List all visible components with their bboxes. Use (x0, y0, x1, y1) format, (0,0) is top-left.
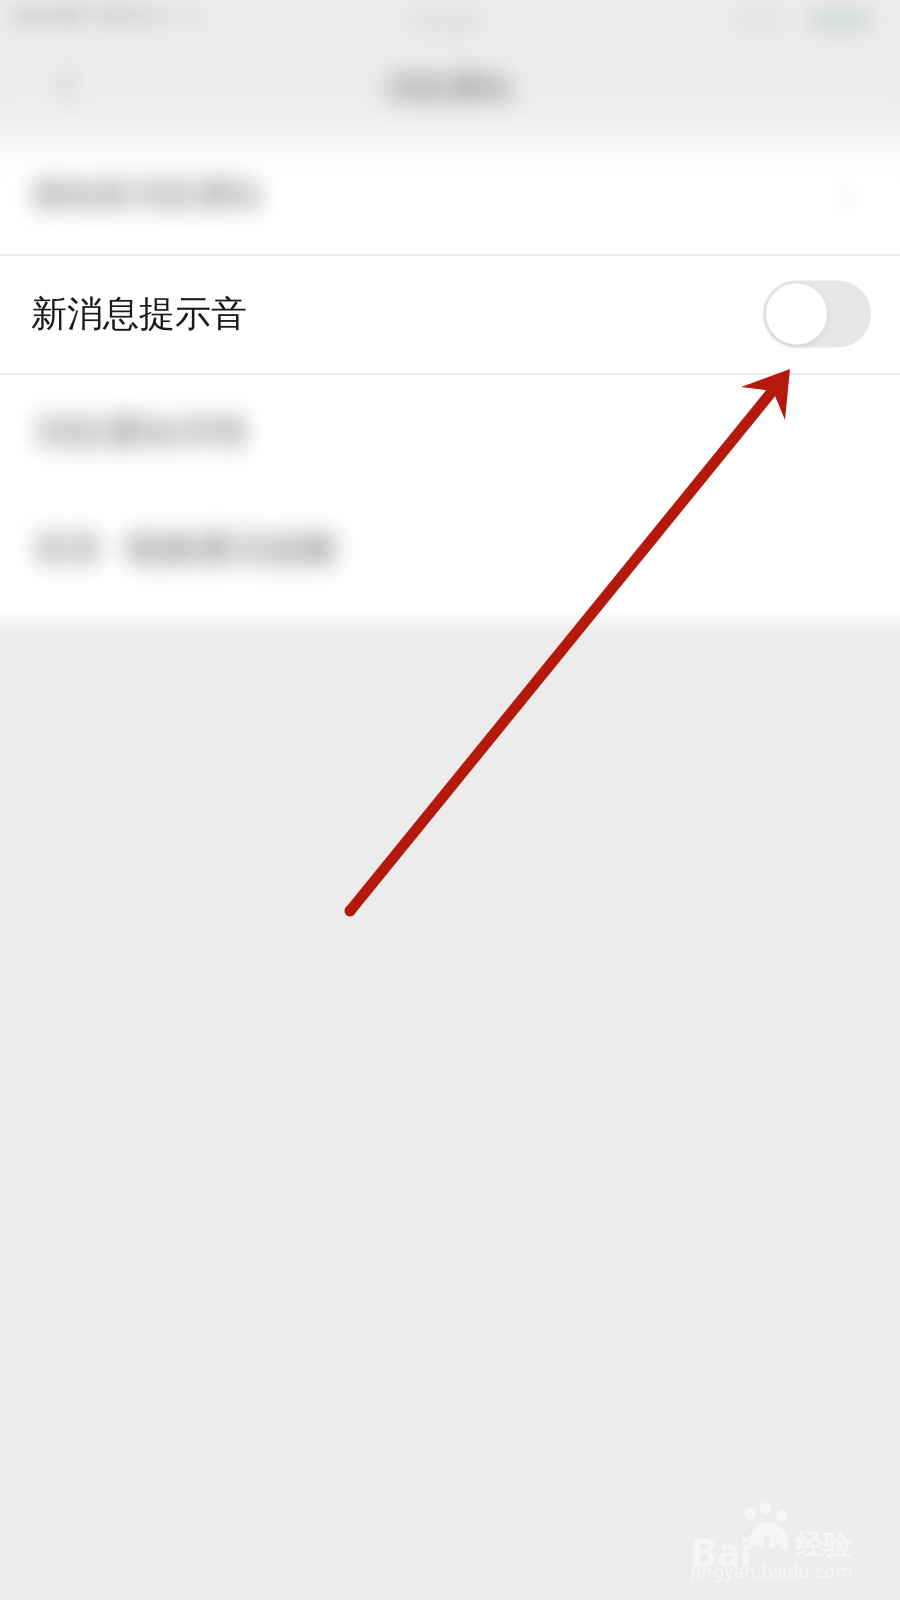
staticText: 消息通知详情 (32, 323, 248, 367)
staticText: 新消息提示音 (31, 292, 247, 336)
staticText: 视频通话提醒 (123, 440, 339, 484)
staticText: du (748, 1526, 797, 1577)
staticText: jingyan.baidu.com (691, 1558, 852, 1583)
staticText: Bai (691, 1526, 752, 1577)
staticText: 语音 (32, 440, 104, 484)
button[interactable]: 新消息提示音 (0, 255, 900, 373)
staticText: 经验 (795, 1528, 851, 1562)
